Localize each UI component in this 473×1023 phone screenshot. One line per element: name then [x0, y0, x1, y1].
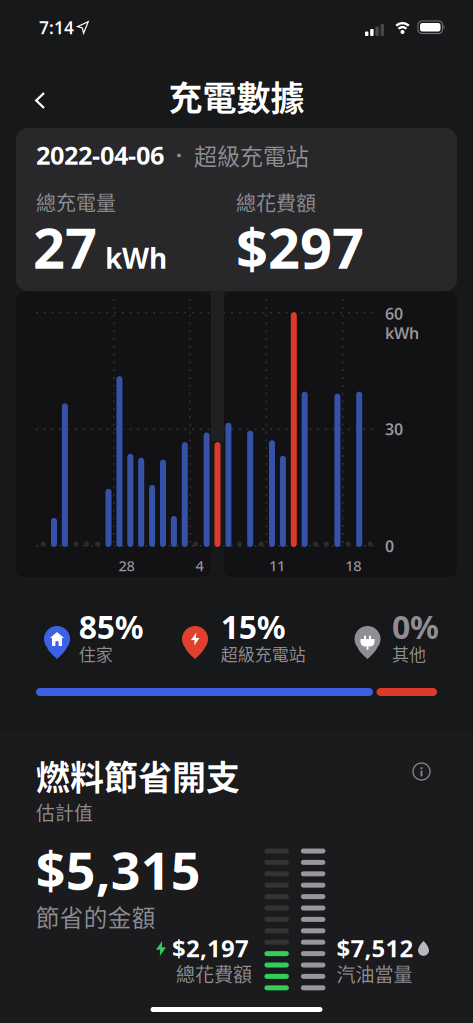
- staticText: 0: [385, 535, 394, 557]
- staticText: 7:14: [39, 16, 74, 39]
- staticText: 總花費額: [236, 187, 316, 216]
- staticText: 85%: [79, 605, 144, 648]
- button[interactable]: Back: [21, 82, 59, 119]
- staticText: $297: [236, 210, 364, 284]
- staticText: 60: [385, 303, 403, 324]
- button[interactable]: Info: [409, 759, 433, 783]
- staticText: 汽油當量: [336, 960, 412, 987]
- staticText: 11: [269, 556, 285, 575]
- staticText: $5,315: [36, 835, 201, 904]
- staticText: 27: [33, 210, 97, 284]
- staticText: ·: [164, 141, 194, 169]
- staticText: 28: [119, 556, 135, 575]
- staticText: 其他: [392, 641, 426, 666]
- staticText: $7,512: [336, 932, 413, 964]
- staticText: 2022-04-06: [36, 138, 164, 172]
- staticText: 總充電量: [36, 187, 116, 216]
- staticText: 總花費額: [176, 960, 252, 987]
- staticText: 18: [345, 556, 361, 575]
- staticText: 充電數據: [168, 71, 304, 121]
- staticText: 住家: [79, 641, 113, 666]
- staticText: $2,197: [172, 932, 249, 964]
- staticText: 30: [385, 418, 403, 440]
- staticText: 超級充電站: [194, 138, 309, 172]
- staticText: 節省的金額: [36, 899, 156, 933]
- staticText: 燃料節省開支: [36, 751, 240, 800]
- staticText: 超級充電站: [221, 641, 306, 666]
- staticText: kWh: [385, 322, 419, 344]
- staticText: 4: [195, 556, 203, 575]
- staticText: 0%: [392, 605, 439, 648]
- staticText: 估計值: [36, 798, 93, 826]
- staticText: 15%: [221, 605, 286, 648]
- staticText: kWh: [105, 239, 167, 276]
